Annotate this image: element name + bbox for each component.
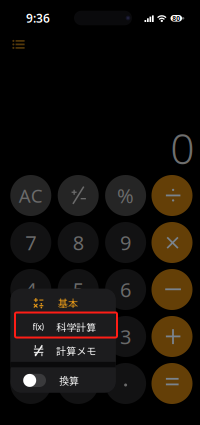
staticText: 換算 (59, 373, 79, 388)
button[interactable]: 0 (10, 363, 51, 404)
button[interactable] (11, 315, 116, 339)
staticText: 8 (73, 229, 84, 256)
staticText: f(x) (33, 322, 44, 332)
staticText: 6 (120, 276, 131, 303)
button[interactable] (11, 291, 116, 315)
button[interactable]: AC (10, 175, 51, 216)
button[interactable]: Divide (151, 175, 192, 216)
button[interactable]: Minus (151, 269, 192, 310)
button[interactable]: 9 (105, 222, 146, 263)
staticText: 2 (73, 323, 84, 350)
button[interactable]: 8 (58, 222, 99, 263)
staticText: 3 (120, 323, 131, 350)
staticText: 4 (25, 276, 36, 303)
button[interactable]: 2 (58, 316, 99, 357)
button[interactable]: % (105, 175, 146, 216)
button[interactable]: Plus (151, 316, 192, 357)
button[interactable]: 6 (105, 269, 146, 310)
staticText: 0 (25, 370, 36, 397)
staticText: 5 (73, 276, 84, 303)
button[interactable]: 4 (10, 269, 51, 310)
staticText: 7 (25, 229, 36, 256)
staticText: % (117, 182, 134, 209)
button[interactable] (58, 363, 99, 404)
staticText: 計算メモ (56, 343, 96, 358)
button[interactable]: 1 (10, 316, 51, 357)
staticText: 基本 (58, 296, 78, 310)
button[interactable]: Equals (151, 363, 192, 404)
staticText: 1 (25, 323, 36, 350)
button[interactable]: Toggle sign (58, 175, 99, 216)
button[interactable]: Decimal point (105, 363, 146, 404)
staticText: 0 (170, 119, 194, 176)
staticText: 9 (120, 229, 131, 256)
staticText: 科学計算 (56, 320, 96, 334)
button[interactable]: Calculator mode (4, 31, 32, 57)
staticText: AC (19, 183, 43, 208)
button[interactable]: 5 (58, 269, 99, 310)
button[interactable]: Multiply (151, 222, 192, 263)
button[interactable]: 3 (105, 316, 146, 357)
staticText: 80 (172, 14, 180, 23)
button[interactable] (11, 339, 116, 362)
button[interactable]: 換算 (11, 368, 116, 392)
staticText: 9:36 (26, 10, 50, 26)
button[interactable]: 7 (10, 222, 51, 263)
